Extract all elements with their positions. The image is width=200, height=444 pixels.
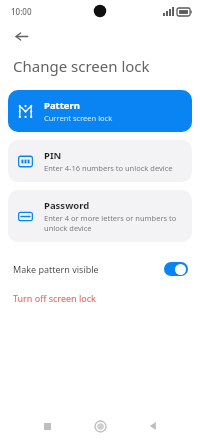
staticText: Pattern — [44, 99, 80, 112]
button[interactable]: Back — [9, 24, 33, 48]
button[interactable]: Pattern — [8, 90, 192, 132]
button[interactable]: Back — [140, 413, 166, 439]
staticText: 10:00 — [11, 6, 32, 17]
button[interactable]: PIN — [8, 140, 192, 182]
button[interactable]: Make pattern visible — [0, 258, 200, 280]
staticText: PIN — [44, 149, 62, 162]
staticText: Password — [44, 199, 90, 212]
staticText: Current screen lock — [44, 113, 113, 123]
button[interactable]: Recent apps — [34, 413, 60, 439]
staticText: Make pattern visible — [13, 263, 164, 275]
button[interactable]: Make pattern visible toggle — [164, 262, 188, 276]
button[interactable]: Home — [87, 413, 113, 439]
button[interactable]: Turn off screen lock — [0, 290, 200, 306]
staticText: Change screen lock — [13, 56, 150, 76]
staticText: Turn off screen lock — [13, 292, 96, 304]
button[interactable]: Password — [8, 190, 192, 242]
staticText: Enter 4 or more letters or numbers to un… — [44, 213, 182, 233]
staticText: Enter 4-16 numbers to unlock device — [44, 163, 173, 173]
